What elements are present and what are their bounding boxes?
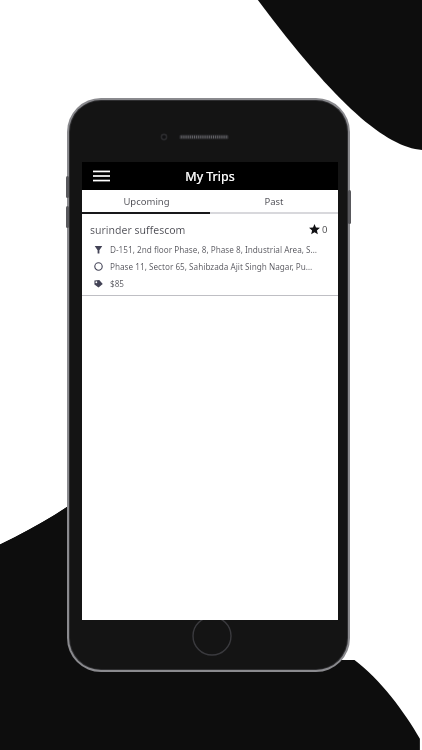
staticText: Phase 11, Sector 65, Sahibzada Ajit Sing… [110, 261, 313, 272]
button[interactable]: Open navigation menu [88, 164, 114, 188]
staticText: Past [264, 195, 284, 208]
button[interactable]: Rating 0 [307, 221, 330, 238]
staticText: Upcoming [123, 195, 170, 208]
staticText: My Trips [185, 168, 235, 185]
button[interactable]: Upcoming [82, 190, 210, 212]
staticText: $85 [110, 278, 125, 289]
button[interactable]: Past [210, 190, 338, 212]
staticText: D-151, 2nd floor Phase, 8, Phase 8, Indu… [110, 244, 318, 255]
staticText: 0 [322, 223, 328, 236]
button[interactable]: surinder suffescom [82, 214, 338, 295]
staticText: surinder suffescom [90, 223, 307, 237]
